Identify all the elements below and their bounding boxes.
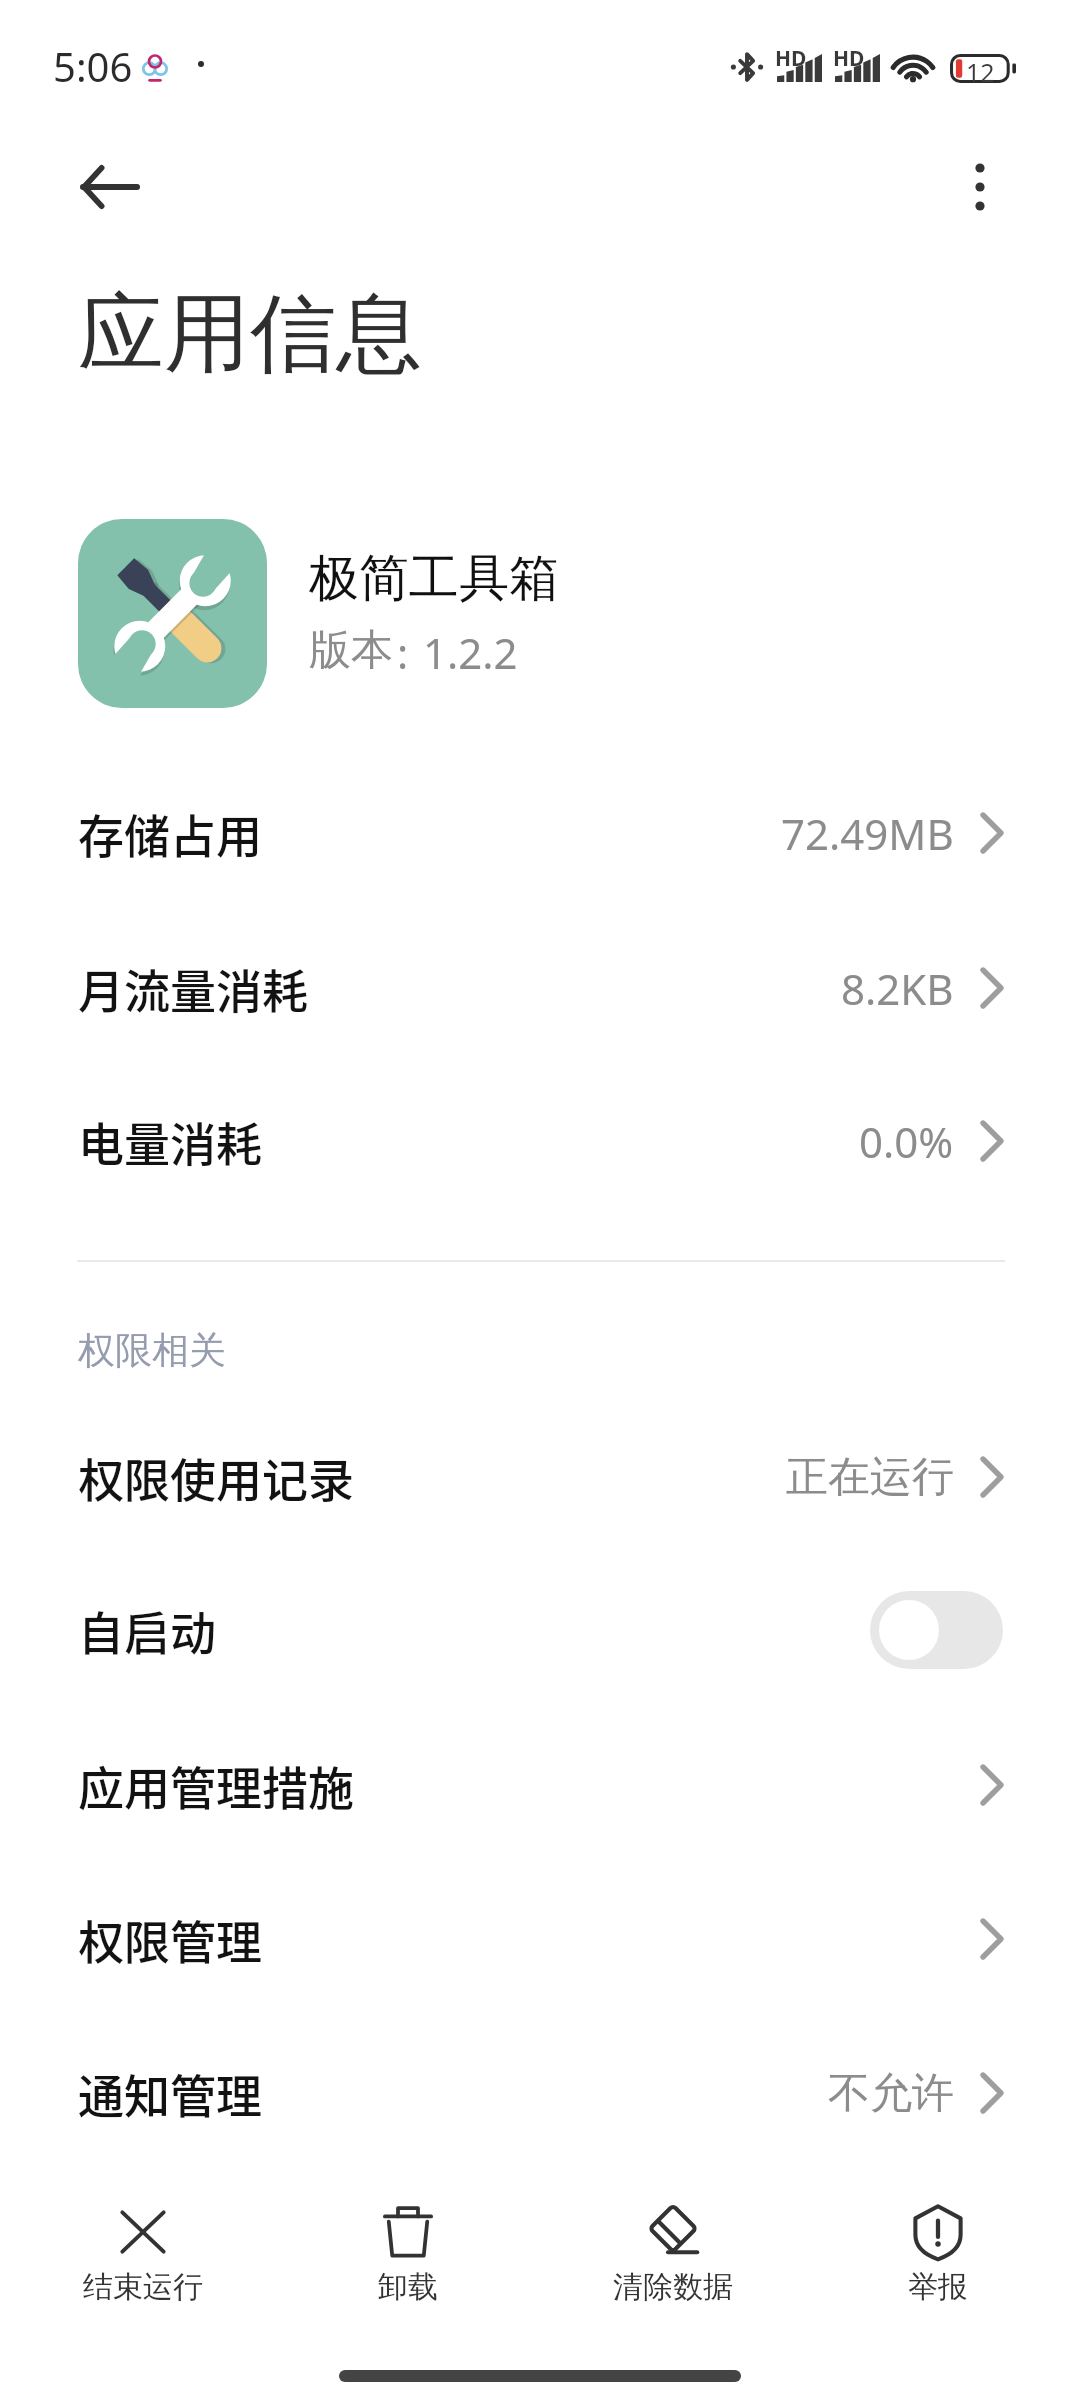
staticText: HD — [775, 44, 807, 73]
button[interactable]: 结束运行 — [10, 2190, 275, 2330]
staticText: 自启动 — [78, 1597, 216, 1664]
button[interactable]: 自启动 — [0, 1553, 1080, 1707]
staticText: 8.2KB — [841, 960, 954, 1017]
staticText: : — [397, 624, 409, 681]
button[interactable]: 电量消耗 — [0, 1064, 1080, 1218]
staticText: 权限使用记录 — [78, 1444, 354, 1511]
staticText: 卸载 — [378, 2268, 438, 2306]
staticText: 清除数据 — [613, 2268, 733, 2306]
button[interactable]: 应用管理措施 — [0, 1708, 1080, 1862]
staticText: 应用管理措施 — [78, 1752, 354, 1819]
staticText: 1.2.2 — [423, 624, 518, 681]
staticText: 举报 — [908, 2268, 968, 2306]
staticText: 结束运行 — [83, 2268, 203, 2306]
button[interactable]: Back — [50, 127, 170, 247]
button[interactable]: 存储占用 — [0, 756, 1080, 910]
staticText: 0.0% — [859, 1113, 954, 1170]
button[interactable]: 通知管理 — [0, 2016, 1080, 2170]
button[interactable]: 权限使用记录 — [0, 1400, 1080, 1554]
staticText: 应用信息 — [78, 280, 422, 388]
staticText: HD — [833, 44, 865, 73]
staticText: 月流量消耗 — [78, 955, 308, 1022]
staticText: 权限相关 — [78, 1327, 226, 1374]
button[interactable]: 卸载 — [275, 2190, 540, 2330]
staticText: 权限管理 — [78, 1906, 262, 1973]
button[interactable]: 权限管理 — [0, 1862, 1080, 2016]
staticText: 72.49MB — [781, 805, 954, 862]
button[interactable]: 月流量消耗 — [0, 911, 1080, 1065]
staticText: 12 — [966, 55, 995, 89]
staticText: 5:06 — [53, 39, 133, 93]
staticText: 电量消耗 — [78, 1108, 262, 1175]
staticText: 版本 — [309, 624, 393, 677]
button[interactable]: 举报 — [805, 2190, 1070, 2330]
staticText: 极简工具箱 — [309, 547, 559, 610]
staticText: 不允许 — [828, 2067, 954, 2120]
staticText: 存储占用 — [78, 800, 262, 867]
button[interactable]: 清除数据 — [540, 2190, 805, 2330]
button[interactable]: More options — [930, 137, 1030, 237]
staticText: 通知管理 — [78, 2060, 262, 2127]
staticText: 正在运行 — [786, 1451, 954, 1504]
